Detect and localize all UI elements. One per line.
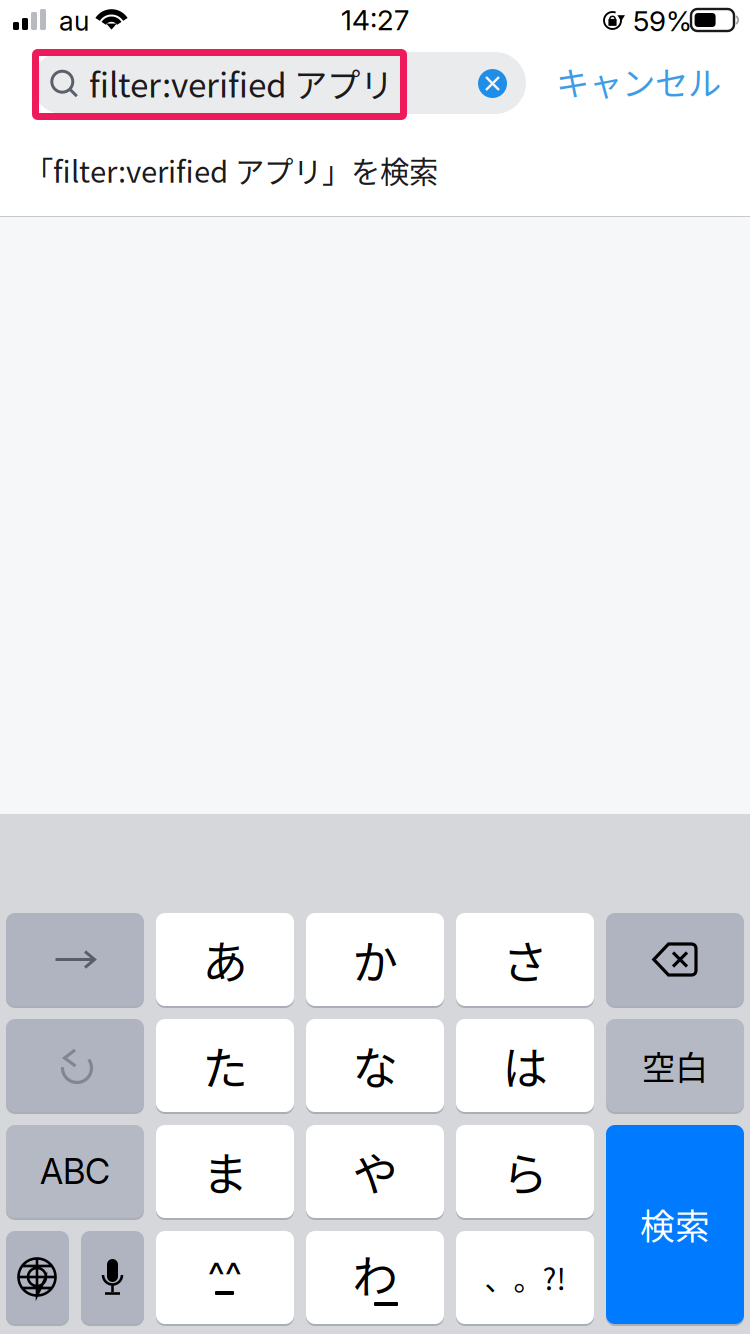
- button[interactable]: な: [306, 1019, 444, 1114]
- staticText: さ: [502, 927, 547, 992]
- button[interactable]: ^^: [156, 1231, 294, 1326]
- staticText: や: [352, 1139, 397, 1204]
- button[interactable]: 「filter:verified アプリ」を検索: [0, 123, 750, 217]
- button[interactable]: た: [156, 1019, 294, 1114]
- button[interactable]: ら: [456, 1125, 594, 1220]
- button[interactable]: Undo: [6, 1019, 144, 1114]
- staticText: 空白: [642, 1041, 708, 1090]
- button[interactable]: は: [456, 1019, 594, 1114]
- staticText: わ: [352, 1241, 397, 1307]
- button[interactable]: さ: [456, 913, 594, 1008]
- button[interactable]: や: [306, 1125, 444, 1220]
- staticText: 59%: [633, 4, 692, 38]
- staticText: ら: [502, 1139, 547, 1204]
- button[interactable]: キャンセル: [556, 50, 734, 112]
- button[interactable]: ま: [156, 1125, 294, 1220]
- staticText: か: [352, 927, 397, 992]
- staticText: filter:verified アプリ: [89, 59, 393, 107]
- button[interactable]: Next: [6, 913, 144, 1008]
- staticText: ま: [202, 1139, 247, 1204]
- staticText: た: [202, 1033, 247, 1098]
- staticText: 14:27: [341, 3, 409, 37]
- staticText: 、。?!: [484, 1256, 565, 1299]
- button[interactable]: Delete: [606, 913, 744, 1008]
- button[interactable]: Dictation: [81, 1231, 144, 1326]
- button[interactable]: あ: [156, 913, 294, 1008]
- staticText: ^^: [208, 1253, 242, 1299]
- staticText: な: [352, 1033, 397, 1098]
- staticText: 検索: [640, 1199, 710, 1250]
- button[interactable]: わ: [306, 1231, 444, 1326]
- button[interactable]: Switch keyboard: [6, 1231, 69, 1326]
- staticText: au: [59, 5, 89, 37]
- button[interactable]: filter:verified アプリ: [32, 52, 526, 114]
- button[interactable]: 、。?!: [456, 1231, 594, 1326]
- button[interactable]: 検索: [606, 1125, 744, 1326]
- staticText: 「filter:verified アプリ」を検索: [24, 149, 438, 191]
- button[interactable]: [606, 1019, 744, 1114]
- staticText: は: [502, 1033, 547, 1098]
- staticText: ABC: [40, 1150, 110, 1192]
- button[interactable]: [6, 1125, 144, 1220]
- staticText: あ: [202, 927, 247, 992]
- button[interactable]: か: [306, 913, 444, 1008]
- staticText: キャンセル: [556, 57, 721, 105]
